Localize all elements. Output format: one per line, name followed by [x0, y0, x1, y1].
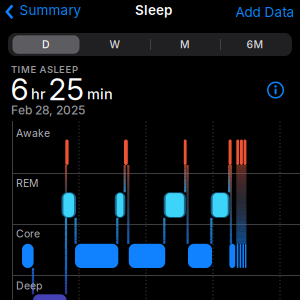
staticText: Core — [16, 227, 40, 240]
staticText: Add Data — [235, 4, 294, 20]
staticText: TIME ASLEEP — [11, 64, 78, 75]
staticText: 6 — [10, 71, 28, 108]
staticText: Summary — [19, 2, 81, 18]
staticText: REM — [16, 177, 38, 189]
staticText: Awake — [16, 127, 50, 139]
staticText: hr — [31, 85, 46, 103]
staticText: D — [42, 38, 50, 51]
staticText: 6M — [246, 38, 263, 51]
staticText: M — [180, 38, 190, 51]
staticText: 25 — [48, 71, 84, 108]
staticText: W — [109, 38, 120, 51]
staticText: Feb 28, 2025 — [11, 103, 85, 117]
staticText: Deep — [16, 279, 42, 292]
staticText: Sleep — [135, 2, 172, 18]
staticText: min — [87, 85, 113, 103]
